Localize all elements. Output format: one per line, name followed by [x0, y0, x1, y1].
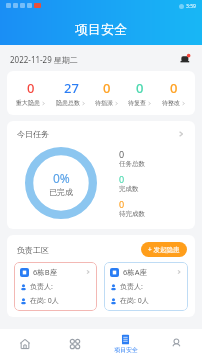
button[interactable]: 0 — [95, 79, 119, 107]
staticText: 0 — [119, 148, 125, 160]
button[interactable]: 项目安全 — [100, 329, 151, 359]
staticText: 在岗: 0人 — [120, 296, 149, 306]
staticText: 隐患总数 — [56, 99, 80, 107]
staticText: 任务总数 — [119, 160, 145, 168]
staticText: 27 — [64, 79, 79, 97]
button[interactable]: Apps — [50, 329, 100, 359]
button[interactable]: 6栋B座 — [14, 262, 97, 311]
staticText: 重大隐患 — [16, 99, 40, 107]
staticText: 项目安全 — [114, 346, 138, 354]
staticText: 0 — [170, 79, 178, 97]
button[interactable]: 0 — [16, 79, 46, 107]
staticText: 0 — [119, 198, 125, 210]
button[interactable]: Home — [0, 329, 50, 359]
button[interactable]: Notifications — [178, 52, 192, 66]
button[interactable]: 27 — [56, 79, 86, 107]
staticText: + 发起隐患 — [148, 245, 180, 254]
staticText: 负责人: — [30, 282, 53, 292]
staticText: 待完成数 — [119, 210, 145, 218]
staticText: 待复查 — [128, 99, 146, 107]
button[interactable]: Profile — [151, 329, 202, 359]
button[interactable]: 0 — [128, 79, 152, 107]
staticText: 在岗: 0人 — [30, 296, 59, 306]
staticText: 6栋B座 — [33, 267, 58, 277]
staticText: 3:59 — [186, 3, 196, 10]
staticText: 负责工区 — [17, 245, 49, 255]
button[interactable]: 今日任务 — [7, 121, 195, 147]
staticText: 项目安全 — [75, 21, 127, 37]
button[interactable]: + 发起隐患 — [141, 242, 187, 257]
staticText: 已完成 — [49, 187, 73, 197]
staticText: 待整改 — [162, 99, 180, 107]
button[interactable]: 6栋A座 — [104, 262, 188, 311]
staticText: 0 — [119, 173, 125, 185]
button[interactable]: 0 — [162, 79, 186, 107]
staticText: 待指派 — [95, 99, 113, 107]
staticText: 0% — [53, 170, 70, 186]
staticText: 今日任务 — [17, 129, 49, 139]
staticText: 完成数 — [119, 185, 139, 193]
staticText: 2022-11-29 星期二 — [10, 54, 78, 65]
staticText: 0 — [103, 79, 111, 97]
staticText: 0 — [27, 79, 35, 97]
staticText: 6栋A座 — [123, 267, 148, 277]
staticText: 负责人: — [120, 282, 143, 292]
staticText: 0 — [136, 79, 144, 97]
